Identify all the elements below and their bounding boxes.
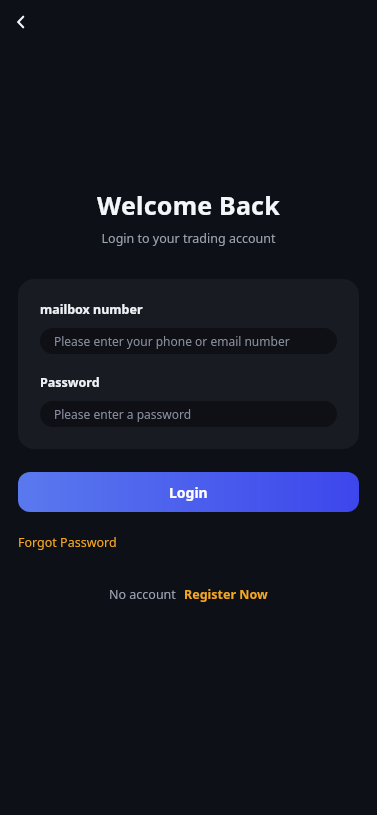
button[interactable]: Please enter your phone or email number: [40, 328, 337, 354]
staticText: Please enter a password: [54, 406, 192, 422]
button[interactable]: Back: [8, 9, 34, 35]
staticText: Welcome Back: [0, 188, 377, 222]
button[interactable]: Please enter a password: [40, 401, 337, 427]
staticText: mailbox number: [40, 301, 143, 318]
staticText: Password: [40, 374, 100, 391]
staticText: Register Now: [184, 586, 268, 603]
staticText: Forgot Password: [18, 534, 117, 551]
button[interactable]: Register Now: [184, 586, 268, 603]
staticText: Please enter your phone or email number: [54, 333, 290, 349]
button[interactable]: Forgot Password: [18, 532, 117, 553]
staticText: No account: [109, 586, 176, 603]
staticText: Login to your trading account: [0, 230, 377, 247]
button[interactable]: Login: [18, 472, 359, 512]
staticText: Login: [169, 483, 208, 502]
